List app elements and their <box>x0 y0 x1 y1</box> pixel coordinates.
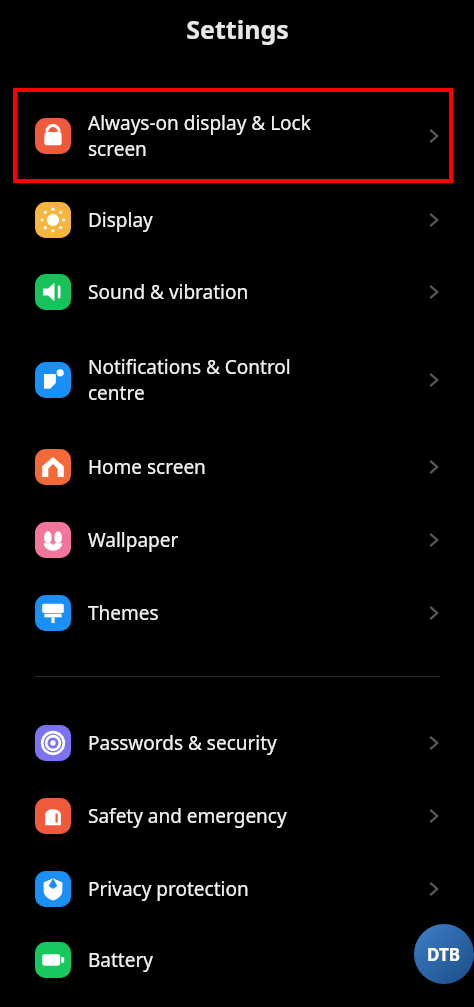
button[interactable]: Battery <box>0 926 474 994</box>
staticText: Notifications & Control centre <box>88 354 408 406</box>
button[interactable]: Always-on display & Lock screen <box>0 88 474 183</box>
staticText: Sound & vibration <box>88 279 408 305</box>
staticText: Home screen <box>88 454 408 480</box>
button[interactable]: Wallpaper <box>0 506 474 574</box>
staticText: Display <box>88 207 408 233</box>
staticText: Wallpaper <box>88 527 408 553</box>
button[interactable]: Sound & vibration <box>0 258 474 326</box>
staticText: Safety and emergency <box>88 803 408 829</box>
button[interactable]: Notifications & Control centre <box>0 332 474 427</box>
staticText: Passwords & security <box>88 730 408 756</box>
button[interactable]: Privacy protection <box>0 855 474 923</box>
button[interactable]: Home screen <box>0 433 474 501</box>
staticText: DTB <box>427 943 461 966</box>
staticText: Battery <box>88 947 408 973</box>
button[interactable]: Passwords & security <box>0 709 474 777</box>
button[interactable]: Display <box>0 186 474 254</box>
button[interactable]: Themes <box>0 579 474 647</box>
button[interactable]: Safety and emergency <box>0 782 474 850</box>
staticText: Themes <box>88 600 408 626</box>
staticText: Always-on display & Lock screen <box>88 110 408 162</box>
staticText: Privacy protection <box>88 876 408 902</box>
staticText: Settings <box>186 12 289 46</box>
